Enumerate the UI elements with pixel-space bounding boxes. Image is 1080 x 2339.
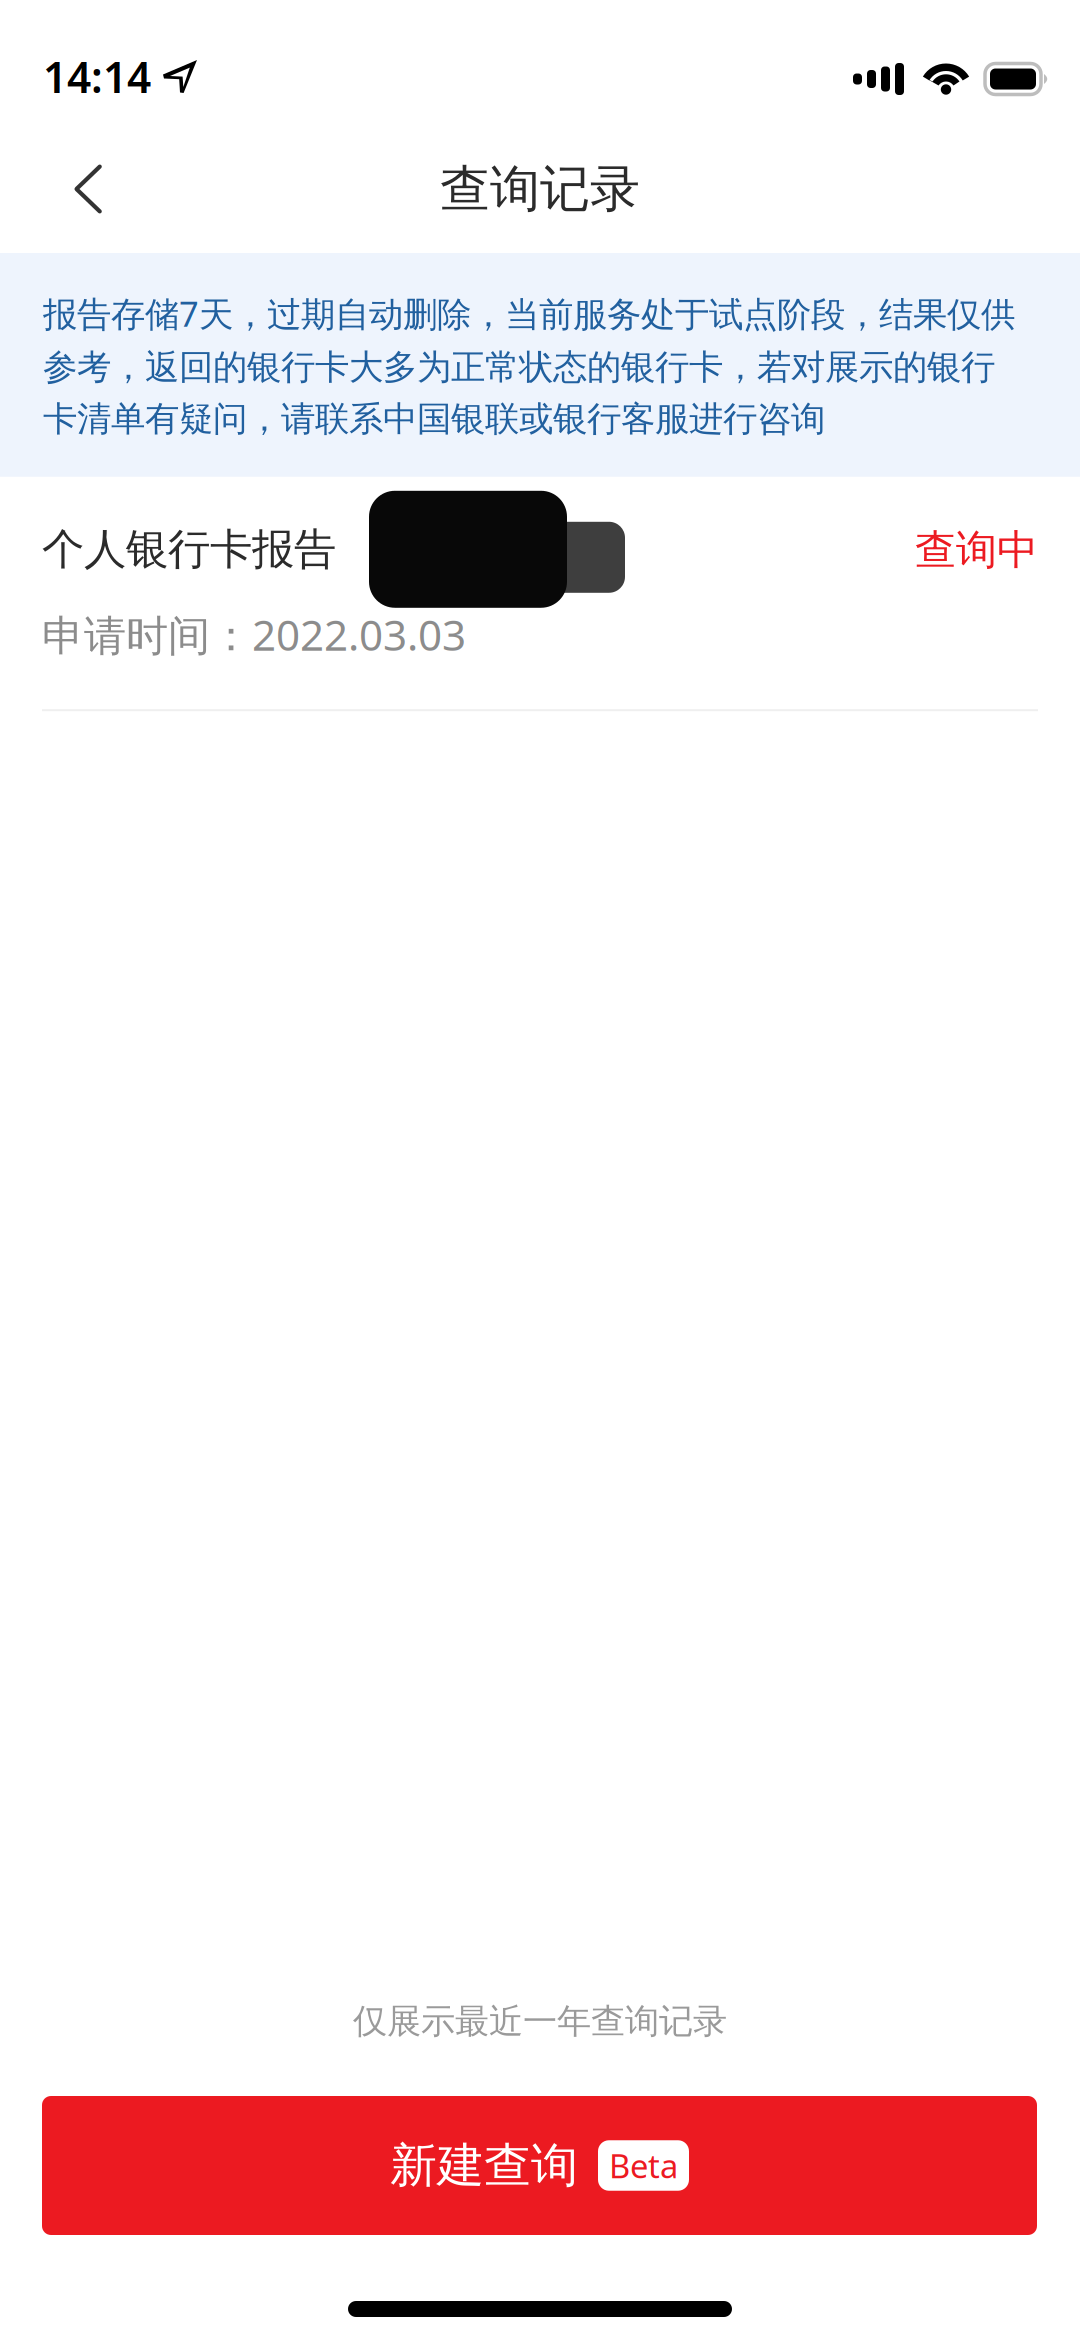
staticText: 14:14 [43,48,151,105]
staticText: 查询记录 [440,157,640,220]
staticText: Beta [609,2143,678,2188]
staticText: 报告存储7天，过期自动删除，当前服务处于试点阶段，结果仅供 参考，返回的银行卡大… [43,290,1015,441]
staticText: 新建查询 [390,2136,578,2195]
staticText: 仅展示最近一年查询记录 [353,2000,727,2043]
staticText: 申请时间：2022.03.03 [42,606,466,663]
staticText: 个人银行卡报告 [42,523,336,576]
button[interactable]: 新建查询 [42,2096,1037,2235]
button[interactable]: 返回 [31,135,143,243]
staticText: 查询中 [915,524,1038,576]
button[interactable]: 个人银行卡报告 [0,477,1080,711]
